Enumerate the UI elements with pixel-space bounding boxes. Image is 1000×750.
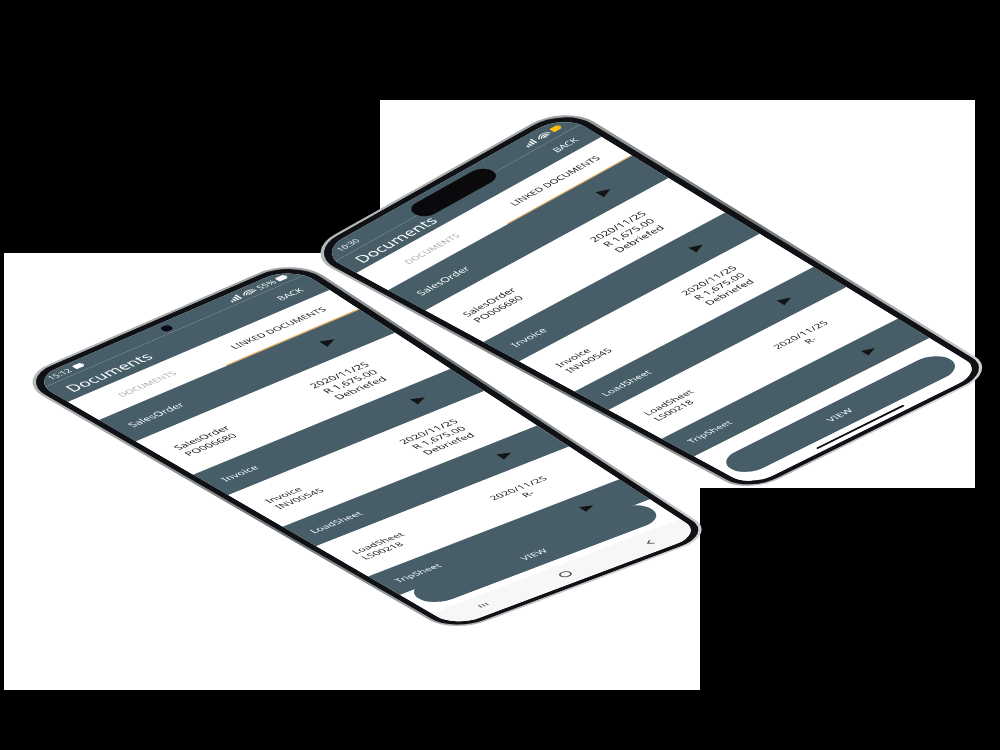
staticText: R 1,675.00 — [690, 271, 748, 302]
button[interactable]: SalesOrder — [99, 309, 451, 475]
staticText: INV00545 — [562, 346, 615, 374]
other: Expand — [777, 295, 795, 305]
staticText: TS00206 — [431, 583, 479, 604]
staticText: 2020/11/25 — [558, 520, 621, 547]
button[interactable]: Home — [512, 551, 618, 597]
staticText: TripSheet — [391, 562, 444, 584]
staticText: LINKED DOCUMENTS — [227, 305, 329, 351]
staticText: VIEW — [517, 547, 551, 562]
button[interactable]: DOCUMENTS — [68, 347, 227, 420]
staticText: Debriefed — [610, 223, 668, 254]
staticText: R 1,675.00 — [319, 367, 381, 395]
staticText: 2020/11/25 — [586, 209, 649, 244]
other: Expand — [319, 337, 339, 347]
staticText: Documents — [59, 349, 158, 395]
staticText: R- — [800, 335, 820, 345]
button[interactable]: DOCUMENTS — [357, 206, 508, 290]
staticText: SalesOrder — [413, 264, 473, 297]
staticText: LS00218 — [358, 540, 406, 561]
staticText: TripSheet — [422, 576, 475, 598]
staticText: Invoice — [507, 326, 550, 349]
staticText: Debriefed — [419, 431, 478, 457]
staticText: SalesOrder — [170, 423, 233, 452]
staticText: 2020/11/25 — [853, 368, 913, 399]
staticText: R 1,675.00 — [408, 424, 469, 451]
button[interactable]: BACK — [267, 282, 313, 306]
staticText: TripSheet — [684, 419, 735, 445]
staticText: Invoice — [552, 346, 594, 369]
staticText: TripSheet — [725, 437, 775, 463]
button[interactable]: TripSheet — [368, 479, 680, 613]
staticText: 10:30 — [333, 237, 362, 253]
staticText: 2020/11/25 — [306, 360, 372, 390]
staticText: Invoice — [261, 485, 305, 505]
staticText: PO006680 — [470, 293, 527, 324]
staticText: Documents — [349, 213, 442, 266]
other: Expand — [496, 450, 515, 459]
staticText: Invoice — [217, 463, 262, 483]
staticText: LoadSheet — [640, 388, 697, 417]
staticText: DOCUMENTS — [401, 231, 463, 266]
staticText: 55% — [253, 278, 279, 291]
staticText: R- — [518, 489, 537, 499]
staticText: LoadSheet — [306, 509, 366, 535]
button[interactable]: SalesOrder — [388, 156, 725, 342]
button[interactable]: Invoice — [483, 213, 814, 392]
staticText: 2020/11/25 — [396, 417, 461, 446]
staticText: 2020/11/25 — [677, 264, 740, 297]
staticText: Debriefed — [330, 374, 390, 401]
button[interactable]: Invoice — [193, 369, 537, 527]
staticText: DOCUMENTS — [114, 369, 180, 399]
staticText: SalesOrder — [459, 285, 519, 318]
button[interactable]: BACK — [543, 132, 587, 158]
staticText: LoadSheet — [348, 530, 407, 555]
other: Expand — [579, 503, 597, 512]
button[interactable]: Recents — [431, 583, 535, 627]
staticText: LINKED DOCUMENTS — [507, 154, 603, 208]
staticText: TS00206 — [734, 445, 780, 468]
button[interactable]: LoadSheet — [282, 425, 619, 576]
button[interactable]: LINKED DOCUMENTS — [196, 290, 360, 366]
staticText: INV00545 — [271, 486, 327, 511]
staticText: R- — [589, 534, 609, 544]
staticText: BACK — [273, 286, 307, 302]
staticText: LoadSheet — [598, 368, 654, 398]
staticText: Debriefed — [701, 277, 757, 307]
staticText: R 1,675.00 — [599, 216, 658, 249]
staticText: 2020/11/25 — [770, 319, 831, 351]
other: Expand — [410, 395, 429, 404]
staticText: LS00218 — [650, 398, 696, 422]
staticText: BACK — [549, 136, 581, 154]
button[interactable]: LoadSheet — [574, 267, 898, 439]
other: Expand — [861, 346, 879, 355]
button[interactable]: Back — [595, 519, 703, 566]
staticText: 15:12 — [44, 367, 74, 381]
other: Expand — [688, 242, 707, 252]
staticText: 2020/11/25 — [486, 474, 550, 502]
button[interactable]: VIEW — [717, 351, 965, 477]
button[interactable]: VIEW — [404, 500, 666, 607]
other: Expand — [595, 186, 615, 197]
button[interactable]: LINKED DOCUMENTS — [477, 137, 632, 224]
staticText: PO006680 — [181, 431, 240, 458]
button[interactable]: TripSheet — [662, 319, 979, 484]
staticText: SalesOrder — [124, 400, 188, 429]
staticText: VIEW — [823, 406, 856, 423]
